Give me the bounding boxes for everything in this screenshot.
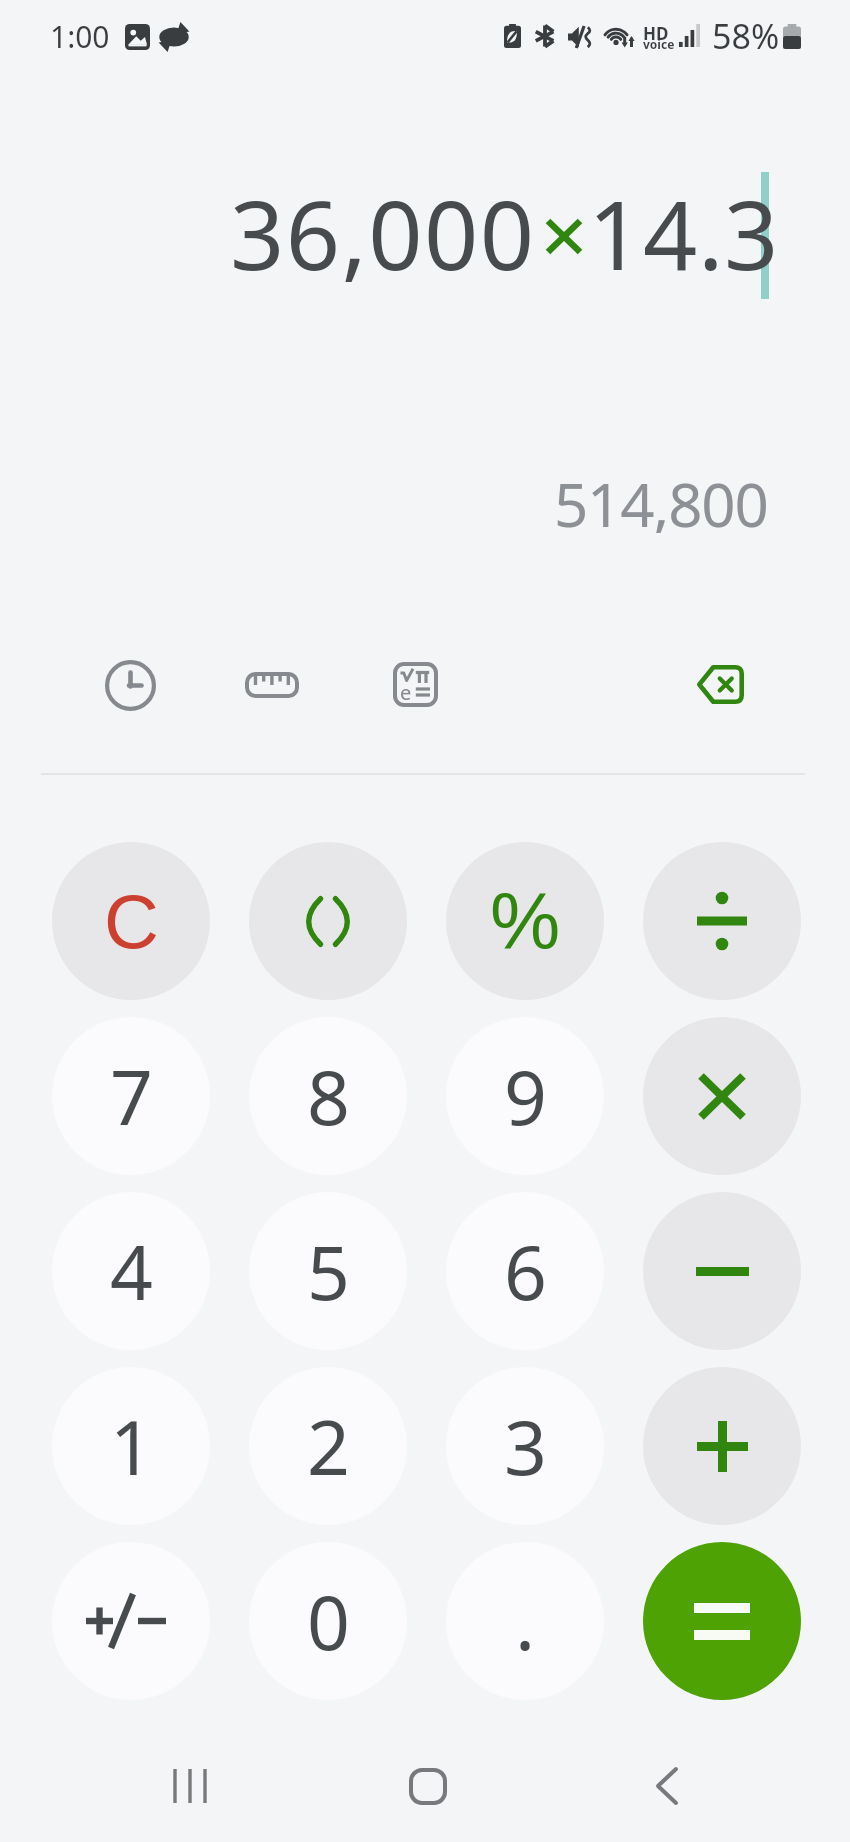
- button[interactable]: Parentheses: [249, 842, 407, 1000]
- button[interactable]: Home: [388, 1746, 468, 1826]
- staticText: 2: [307, 1395, 350, 1497]
- staticText: 514,800: [554, 463, 768, 533]
- staticText: 0: [307, 1570, 350, 1672]
- staticText: 7: [110, 1045, 153, 1147]
- button[interactable]: 2: [249, 1367, 407, 1525]
- staticText: HD: [643, 22, 669, 45]
- button[interactable]: 8: [249, 1017, 407, 1175]
- button[interactable]: Clear: [52, 842, 210, 1000]
- button[interactable]: Divide: [643, 842, 801, 1000]
- staticText: 14.3: [588, 168, 779, 297]
- button[interactable]: 5: [249, 1192, 407, 1350]
- button[interactable]: 9: [446, 1017, 604, 1175]
- staticText: 1:00: [50, 16, 110, 57]
- button[interactable]: Backspace: [680, 644, 760, 724]
- button[interactable]: 7: [52, 1017, 210, 1175]
- staticText: 5: [307, 1220, 350, 1322]
- button[interactable]: Percent: [446, 842, 604, 1000]
- staticText: 3: [504, 1395, 547, 1497]
- staticText: 58%: [712, 13, 780, 59]
- staticText: 6: [504, 1220, 547, 1322]
- button[interactable]: Unit converter: [232, 645, 312, 725]
- staticText: 4: [110, 1220, 153, 1322]
- staticText: .: [515, 1570, 536, 1672]
- staticText: voice: [643, 36, 675, 52]
- button[interactable]: 4: [52, 1192, 210, 1350]
- staticText: 9: [504, 1045, 547, 1147]
- button[interactable]: Plus: [643, 1367, 801, 1525]
- button[interactable]: Back: [627, 1746, 707, 1826]
- button[interactable]: Decimal point: [446, 1542, 604, 1700]
- button[interactable]: Scientific calculator: [375, 644, 455, 724]
- staticText: %: [490, 877, 561, 965]
- button[interactable]: 1: [52, 1367, 210, 1525]
- button[interactable]: Plus minus: [52, 1542, 210, 1700]
- button[interactable]: Minus: [643, 1192, 801, 1350]
- button[interactable]: 0: [249, 1542, 407, 1700]
- staticText: C: [104, 879, 159, 964]
- staticText: 1: [110, 1395, 153, 1497]
- button[interactable]: Multiply: [643, 1017, 801, 1175]
- button[interactable]: 3: [446, 1367, 604, 1525]
- button[interactable]: 6: [446, 1192, 604, 1350]
- button[interactable]: History: [90, 645, 170, 725]
- staticText: e: [400, 679, 412, 706]
- staticText: 36,000: [230, 168, 536, 297]
- staticText: 8: [307, 1045, 350, 1147]
- button[interactable]: Recent apps: [150, 1746, 230, 1826]
- button[interactable]: Equals: [643, 1542, 801, 1700]
